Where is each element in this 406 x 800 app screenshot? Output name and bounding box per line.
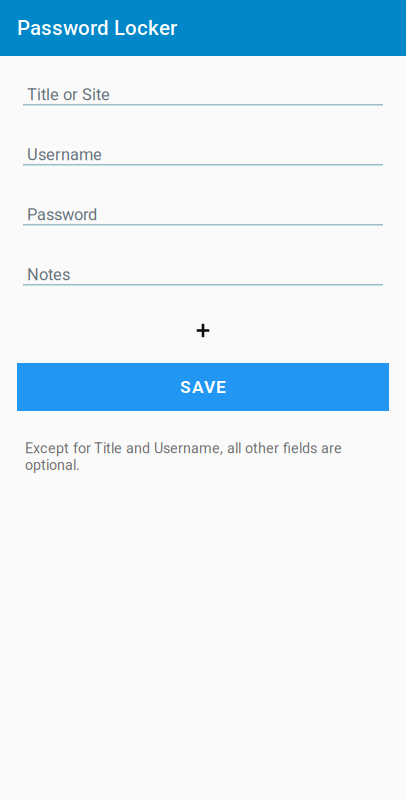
staticText: SAVE bbox=[180, 377, 226, 397]
staticText: Notes bbox=[27, 265, 70, 284]
button[interactable]: SAVE bbox=[17, 363, 389, 411]
staticText: Password bbox=[27, 205, 97, 224]
staticText: Except for Title and Username, all other… bbox=[25, 440, 342, 474]
button[interactable]: Notes bbox=[23, 241, 383, 285]
button[interactable]: Add field bbox=[179, 308, 227, 352]
button[interactable]: Password bbox=[23, 181, 383, 225]
staticText: Password Locker bbox=[17, 16, 177, 40]
staticText: Username bbox=[27, 145, 102, 164]
staticText: Title or Site bbox=[27, 85, 110, 104]
button[interactable]: Title or Site bbox=[23, 61, 383, 105]
button[interactable]: Username bbox=[23, 121, 383, 165]
